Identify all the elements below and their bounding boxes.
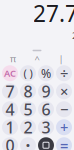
staticText: π — [10, 53, 16, 65]
button[interactable]: ( ) — [20, 65, 36, 81]
button[interactable]: · — [20, 137, 36, 150]
button[interactable]: 6 — [38, 101, 54, 117]
staticText: − — [60, 99, 68, 119]
staticText: 6 — [41, 99, 50, 120]
staticText: 1 — [5, 117, 14, 138]
staticText: % — [41, 65, 51, 81]
button[interactable]: π — [5, 54, 21, 63]
button[interactable]: ÷ — [56, 65, 72, 81]
button[interactable]: − — [56, 101, 72, 117]
button[interactable]: = — [56, 137, 72, 150]
button[interactable]: 8 — [20, 83, 36, 99]
staticText: 9 — [41, 81, 50, 102]
button[interactable]: ^ — [29, 54, 45, 63]
button[interactable]: 9 — [38, 83, 54, 99]
staticText: 8 — [23, 81, 32, 102]
staticText: 27 ¾ — [72, 29, 74, 42]
staticText: ( ) — [23, 66, 32, 80]
staticText: ÷ — [60, 63, 68, 83]
button[interactable]: Calculator options — [38, 137, 54, 150]
button[interactable]: 3 — [38, 119, 54, 135]
button[interactable]: | — [53, 54, 69, 63]
button[interactable]: AC — [2, 65, 18, 81]
staticText: · — [25, 134, 30, 150]
staticText: × — [60, 81, 68, 101]
button[interactable]: 5 — [20, 101, 36, 117]
button[interactable]: % — [38, 65, 54, 81]
staticText: ^ — [34, 53, 39, 65]
button[interactable]: × — [56, 83, 72, 99]
button[interactable]: 4 — [2, 101, 18, 117]
staticText: 0 — [5, 135, 14, 150]
staticText: 27.75 — [33, 0, 74, 28]
staticText: = — [60, 135, 68, 150]
button[interactable]: + — [56, 119, 72, 135]
staticText: 3 — [41, 117, 50, 138]
button[interactable]: 2 — [20, 119, 36, 135]
staticText: 2 — [23, 117, 32, 138]
staticText: 4 — [5, 99, 14, 120]
button[interactable]: 0 — [2, 137, 18, 150]
staticText: + — [60, 117, 68, 137]
staticText: AC — [4, 67, 16, 79]
button[interactable]: 1 — [2, 119, 18, 135]
staticText: | — [58, 53, 63, 65]
staticText: 7 — [5, 81, 14, 102]
staticText: 5 — [23, 99, 32, 120]
button[interactable]: 7 — [2, 83, 18, 99]
